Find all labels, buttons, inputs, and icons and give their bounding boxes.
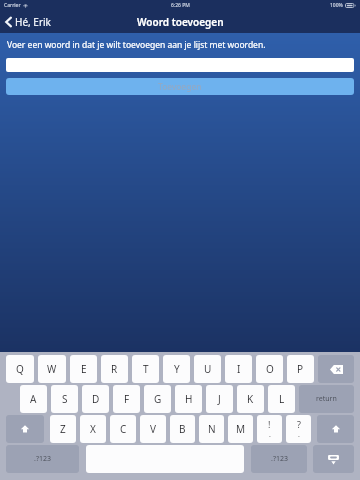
staticText: B [179,422,186,436]
staticText: J [218,392,221,406]
button[interactable]: P [287,355,314,383]
button[interactable]: .?123 [6,445,79,473]
button[interactable]: L [268,385,295,413]
staticText: Voer een woord in dat je wilt toevoegen … [7,39,266,51]
staticText: F [124,392,130,406]
button[interactable]: F [113,385,140,413]
staticText: Woord toevoegen [137,15,224,29]
button[interactable]: .?123 [251,445,307,473]
button[interactable]: return [299,385,354,413]
staticText: S [62,392,68,406]
staticText: 100% [330,2,343,9]
staticText: C [120,422,127,436]
button[interactable]: Hé, Erik [0,11,59,33]
button[interactable]: C [110,415,136,443]
staticText: Toevoegen [158,81,202,93]
button[interactable]: Backspace [318,355,354,383]
staticText: .?123 [34,454,51,464]
button[interactable]: Z [50,415,76,443]
staticText: W [47,362,57,376]
staticText: X [90,422,96,436]
staticText: . [269,430,271,440]
staticText: 6:26 PM [171,2,190,9]
staticText: D [92,392,100,406]
staticText: .?123 [271,454,288,464]
staticText: Q [16,362,24,376]
button[interactable]: B [170,415,195,443]
staticText: return [316,394,337,404]
staticText: ! [268,418,271,430]
staticText: H [185,392,193,406]
button[interactable]: Toevoegen [6,78,354,95]
button[interactable]: J [206,385,233,413]
staticText: V [150,422,156,436]
button[interactable]: G [144,385,171,413]
button[interactable]: O [256,355,283,383]
staticText: Y [174,362,180,376]
button[interactable]: I [225,355,252,383]
staticText: U [204,362,212,376]
staticText: L [279,392,285,406]
button[interactable]: T [132,355,159,383]
button[interactable]: D [82,385,109,413]
button[interactable]: Shift [6,415,44,443]
staticText: M [236,422,246,436]
button[interactable]: Y [163,355,190,383]
staticText: Carrier [4,2,21,9]
staticText: K [247,392,254,406]
button[interactable]: X [80,415,106,443]
staticText: I [237,362,241,376]
button[interactable]: U [194,355,221,383]
button[interactable]: M [228,415,253,443]
staticText: Hé, Erik [15,15,51,29]
button[interactable]: Hide keyboard [313,445,354,473]
staticText: ? [297,418,301,430]
staticText: O [266,362,274,376]
button[interactable]: S [51,385,78,413]
staticText: A [30,392,37,406]
staticText: N [208,422,216,436]
staticText: P [297,362,304,376]
button[interactable]: E [70,355,97,383]
button[interactable]: ! [257,415,282,443]
button[interactable]: R [101,355,128,383]
staticText: T [143,362,149,376]
button[interactable]: ? [286,415,311,443]
button[interactable]: W [38,355,66,383]
staticText: . [298,430,300,440]
staticText: R [111,362,118,376]
button[interactable]: A [20,385,47,413]
staticText: Z [60,422,66,436]
staticText: E [81,362,87,376]
button[interactable]: Word input field [6,58,354,72]
button[interactable]: V [140,415,166,443]
button[interactable]: Shift [317,415,354,443]
button[interactable]: H [175,385,202,413]
button[interactable]: K [237,385,264,413]
staticText: G [154,392,162,406]
button[interactable]: Q [6,355,34,383]
button[interactable]: N [199,415,224,443]
